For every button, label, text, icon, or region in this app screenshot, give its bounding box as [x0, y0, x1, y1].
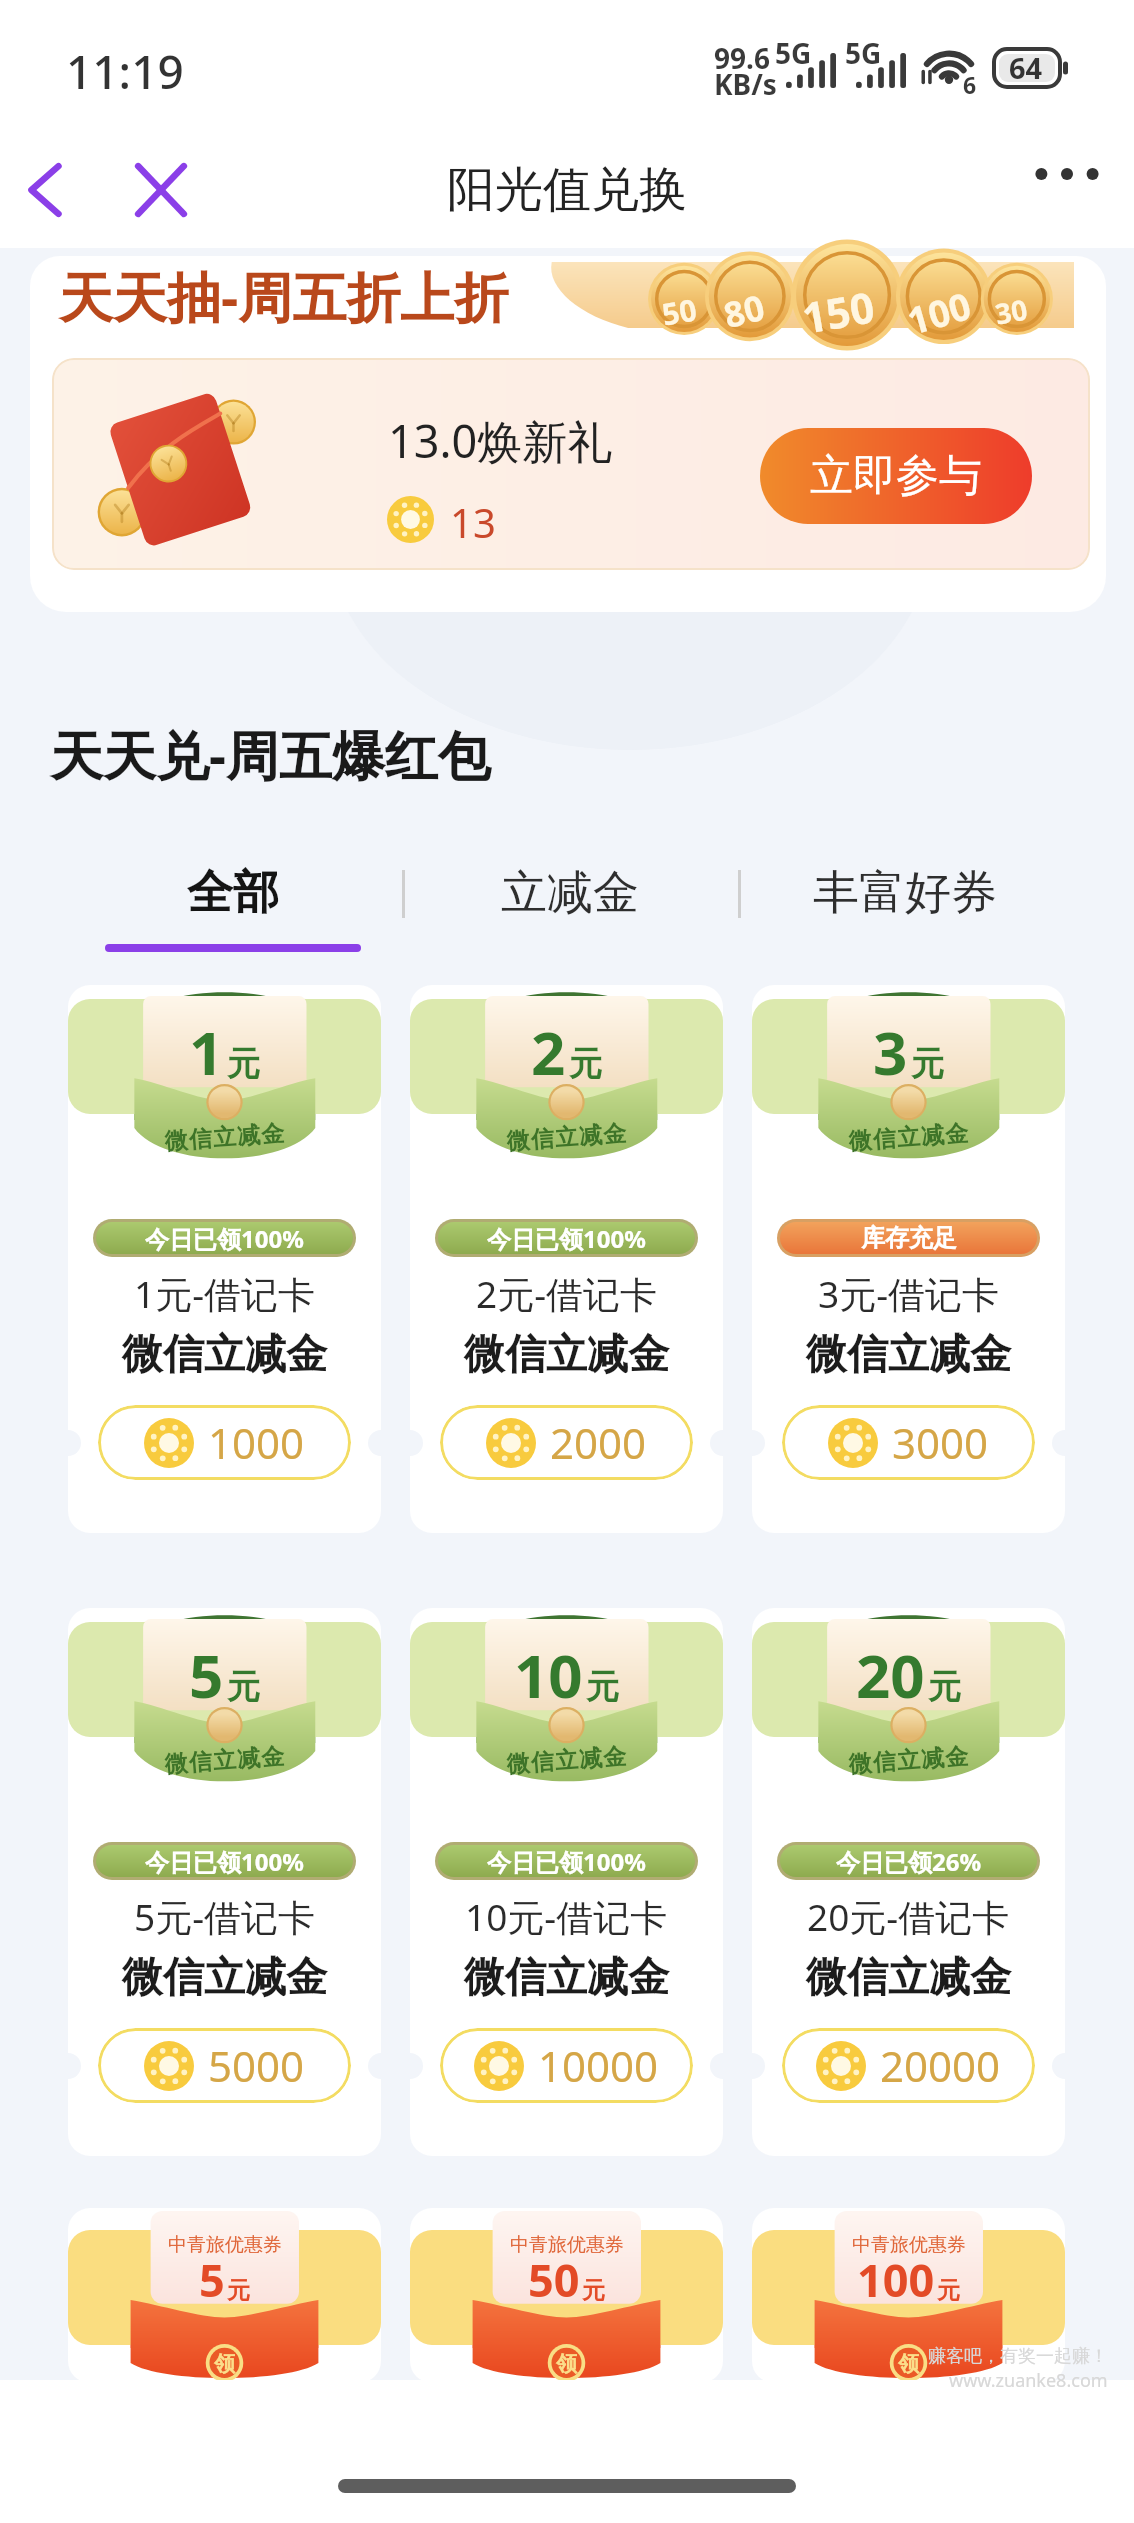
staticText: 3元-借记卡: [818, 1268, 1000, 1319]
staticText: 元: [227, 1043, 260, 1085]
staticText: 10元-借记卡: [465, 1891, 668, 1942]
staticText: 元: [227, 2276, 250, 2305]
staticText: 元: [582, 2276, 605, 2305]
staticText: 微信立减金: [464, 1329, 669, 1381]
staticText: 中青旅优惠券: [510, 2233, 624, 2257]
button[interactable]: 立即参与: [760, 428, 1032, 524]
button[interactable]: 5: [68, 1608, 381, 2156]
staticText: 11:19: [66, 40, 184, 103]
staticText: 30: [992, 289, 1031, 333]
button[interactable]: Close: [117, 146, 205, 234]
staticText: 微信立减金: [806, 1952, 1011, 2004]
button[interactable]: 中青旅优惠券: [410, 2208, 723, 2383]
staticText: 13.0焕新礼: [388, 410, 613, 471]
button[interactable]: 中青旅优惠券: [68, 2208, 381, 2383]
staticText: 100: [901, 279, 977, 345]
staticText: 微信立减金: [505, 1119, 628, 1156]
staticText: 天天兑-周五爆红包: [50, 718, 491, 790]
button[interactable]: 立减金: [440, 838, 700, 938]
button[interactable]: Back: [3, 147, 89, 233]
staticText: 6: [963, 69, 977, 100]
staticText: 5: [189, 1634, 224, 1716]
button[interactable]: 20: [752, 1608, 1065, 2156]
staticText: 微信立减金: [464, 1952, 669, 2004]
staticText: 中青旅优惠券: [168, 2233, 282, 2257]
staticText: 赚客吧，有奖一起赚！: [928, 2345, 1108, 2368]
staticText: 50: [659, 288, 700, 335]
staticText: 20000: [880, 2037, 1001, 2094]
button[interactable]: 全部: [105, 838, 361, 953]
staticText: 3000: [892, 1414, 989, 1471]
staticText: 13: [450, 495, 496, 549]
staticText: 10000: [538, 2037, 659, 2094]
staticText: 领: [898, 2351, 919, 2377]
staticText: 今日已领100%: [487, 1222, 646, 1254]
button[interactable]: 13.0焕新礼: [52, 358, 1090, 570]
staticText: 150: [798, 277, 879, 346]
staticText: 5元-借记卡: [134, 1891, 316, 1942]
staticText: 元: [911, 1043, 944, 1085]
staticText: 微信立减金: [122, 1952, 327, 2004]
staticText: 今日已领100%: [145, 1845, 304, 1877]
staticText: KB/s: [714, 65, 777, 103]
button[interactable]: 1: [68, 985, 381, 1533]
staticText: 5G: [775, 34, 812, 72]
staticText: 100: [857, 2249, 935, 2310]
staticText: 1: [189, 1011, 224, 1093]
staticText: 丰富好券: [813, 864, 997, 922]
staticText: 微信立减金: [505, 1742, 628, 1779]
staticText: 微信立减金: [122, 1329, 327, 1381]
staticText: 元: [227, 1666, 260, 1708]
staticText: 中青旅优惠券: [852, 2233, 966, 2257]
staticText: 今日已领100%: [487, 1845, 646, 1877]
staticText: 80: [719, 283, 770, 339]
staticText: 元: [569, 1043, 602, 1085]
staticText: 50: [528, 2249, 580, 2310]
staticText: 领: [556, 2351, 577, 2377]
staticText: 5G: [845, 34, 882, 72]
staticText: 20元-借记卡: [807, 1891, 1010, 1942]
staticText: 微信立减金: [163, 1742, 286, 1779]
staticText: 64: [1009, 48, 1043, 87]
button[interactable]: 丰富好券: [775, 838, 1035, 938]
staticText: 库存充足: [861, 1223, 957, 1253]
staticText: 微信立减金: [163, 1119, 286, 1156]
staticText: 2: [531, 1011, 566, 1093]
staticText: 元: [586, 1666, 619, 1708]
staticText: 99.6: [714, 39, 770, 77]
staticText: 5000: [208, 2037, 305, 2094]
staticText: 10: [514, 1634, 583, 1716]
staticText: 元: [928, 1666, 961, 1708]
staticText: 领: [214, 2351, 235, 2377]
button[interactable]: 10: [410, 1608, 723, 2156]
button[interactable]: More options: [1022, 129, 1112, 219]
staticText: 今日已领100%: [145, 1222, 304, 1254]
staticText: 3: [873, 1011, 908, 1093]
staticText: 2000: [550, 1414, 647, 1471]
button[interactable]: 2: [410, 985, 723, 1533]
staticText: 20: [856, 1634, 925, 1716]
staticText: 立减金: [501, 864, 639, 922]
staticText: 5: [199, 2249, 225, 2310]
staticText: 1000: [208, 1414, 305, 1471]
button[interactable]: 3: [752, 985, 1065, 1533]
staticText: 元: [937, 2276, 960, 2305]
staticText: 天天抽-周五折上折: [59, 259, 509, 333]
staticText: 立即参与: [810, 449, 982, 503]
staticText: 阳光值兑换: [447, 160, 687, 220]
button[interactable]: 中青旅优惠券: [752, 2208, 1065, 2383]
staticText: 1元-借记卡: [134, 1268, 316, 1319]
staticText: 微信立减金: [847, 1119, 970, 1156]
staticText: 微信立减金: [806, 1329, 1011, 1381]
staticText: 全部: [187, 864, 279, 922]
staticText: 微信立减金: [847, 1742, 970, 1779]
staticText: 今日已领26%: [836, 1845, 982, 1877]
staticText: www.zuanke8.com: [949, 2368, 1108, 2393]
staticText: 2元-借记卡: [476, 1268, 658, 1319]
